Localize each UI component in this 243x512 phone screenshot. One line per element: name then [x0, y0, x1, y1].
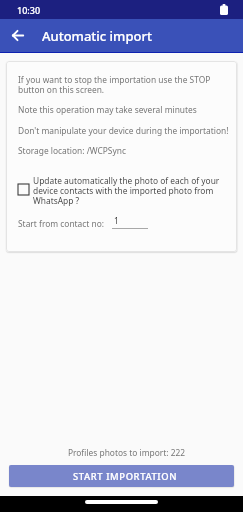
staticText: 10:30	[17, 4, 41, 16]
staticText: 1	[114, 215, 119, 226]
staticText: Don't manipulate your device during the …	[18, 125, 229, 136]
button[interactable]: START IMPORTATION	[9, 465, 234, 487]
staticText: Note this operation may take several min…	[18, 104, 197, 115]
staticText: If you want to stop the importation use …	[18, 74, 211, 95]
staticText: Update automatically the photo of each o…	[33, 175, 220, 206]
staticText: Automatic import	[42, 27, 152, 45]
staticText: Storage location: /WCPSync	[18, 145, 126, 156]
staticText: Profiles photos to import: 222	[5, 447, 243, 458]
staticText: START IMPORTATION	[73, 470, 178, 483]
button[interactable]: Update automatically the photo of each o…	[18, 175, 229, 206]
button[interactable]: Back	[4, 22, 31, 49]
staticText: Start from contact no:	[18, 218, 105, 229]
